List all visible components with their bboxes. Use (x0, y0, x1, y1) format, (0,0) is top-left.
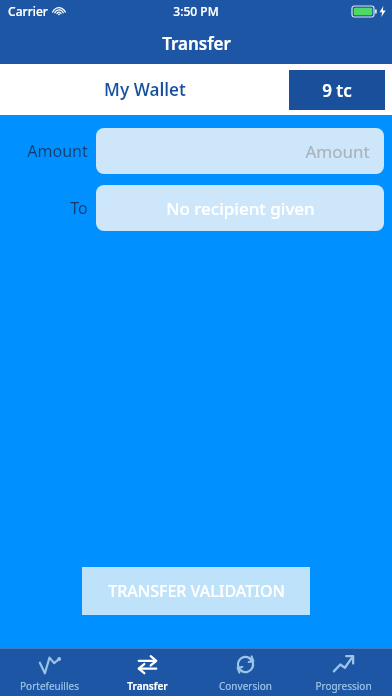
staticText: Portefeuilles (20, 679, 79, 693)
staticText: Amount (305, 140, 370, 163)
staticText: No recipient given (166, 197, 315, 220)
button[interactable]: Transfer (98, 649, 196, 696)
other: Conversion (234, 653, 257, 676)
staticText: Transfer (162, 32, 231, 55)
staticText: To (70, 197, 88, 219)
button[interactable]: 9 tc (289, 70, 385, 110)
button[interactable]: Portefeuilles (0, 649, 98, 696)
staticText: 3:50 PM (173, 3, 219, 19)
staticText: Progression (315, 679, 372, 693)
other: Transfer (136, 653, 159, 676)
other: Progression (332, 653, 355, 676)
button[interactable]: Amount (96, 128, 384, 174)
staticText: Carrier (8, 3, 48, 19)
staticText: Transfer (127, 679, 168, 693)
staticText: Amount (27, 140, 88, 162)
button[interactable]: Conversion (196, 649, 294, 696)
staticText: Conversion (219, 679, 272, 693)
staticText: 9 tc (322, 79, 352, 102)
button[interactable]: No recipient given (96, 185, 384, 231)
button[interactable]: TRANSFER VALIDATION (82, 567, 310, 615)
other: Portefeuilles (38, 653, 61, 676)
button[interactable]: Progression (294, 649, 392, 696)
staticText: My Wallet (104, 78, 186, 101)
staticText: TRANSFER VALIDATION (108, 580, 285, 602)
